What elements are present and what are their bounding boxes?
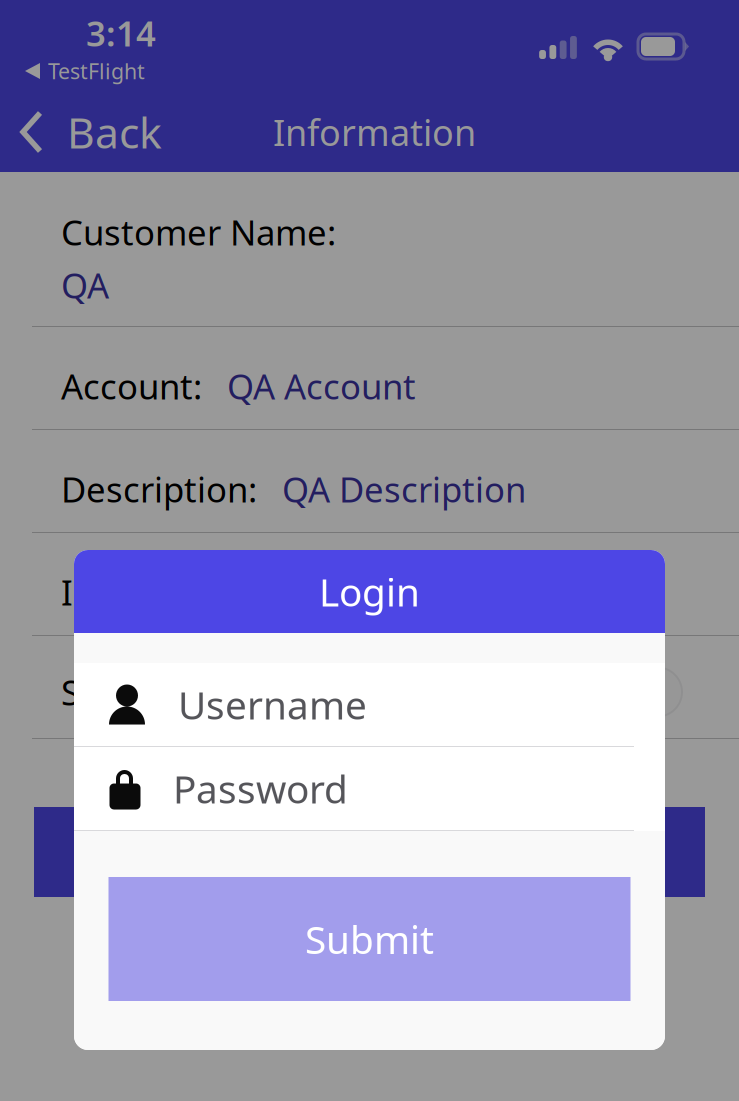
staticText: 3:14: [86, 10, 156, 56]
staticText: Description:: [61, 466, 257, 512]
staticText: Password: [173, 763, 348, 814]
staticText: Account:: [61, 363, 202, 409]
staticText: Id:: [61, 569, 103, 615]
staticText: Login: [324, 829, 414, 875]
staticText: Submit: [305, 913, 434, 965]
staticText: QA Description: [282, 466, 526, 512]
staticText: Status:: [61, 669, 172, 715]
staticText: Back: [67, 104, 162, 160]
button[interactable]: Back: [0, 92, 176, 172]
staticText: Customer Name:: [61, 209, 336, 255]
button[interactable]: Submit: [108, 877, 630, 1001]
staticText: Information: [273, 108, 476, 156]
staticText: Username: [178, 679, 367, 730]
staticText: 7c3f19a0-5d2b-48ee: [128, 569, 460, 615]
staticText: QA Account: [227, 363, 416, 409]
staticText: QA: [61, 262, 109, 308]
button[interactable]: Login: [34, 807, 705, 897]
staticText: Login: [319, 566, 420, 617]
button[interactable]: Status toggle: [601, 666, 683, 717]
staticText: TestFlight: [48, 57, 145, 85]
